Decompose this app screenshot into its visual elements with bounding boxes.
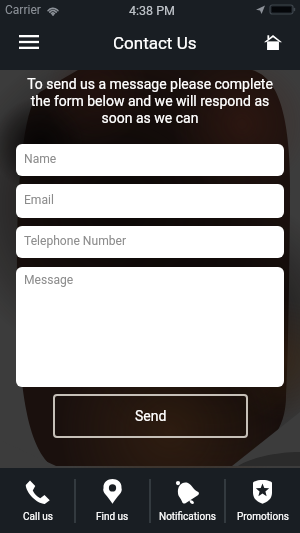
- staticText: Send: [135, 408, 167, 424]
- staticText: Find us: [96, 511, 129, 523]
- staticText: Email: [24, 193, 54, 207]
- button[interactable]: Home: [250, 23, 295, 68]
- button[interactable]: Menu: [8, 23, 53, 68]
- button[interactable]: Call us: [0, 468, 75, 533]
- staticText: Message: [24, 273, 74, 287]
- staticText: To send us a message please complete the…: [18, 76, 282, 127]
- button[interactable]: Email: [16, 184, 284, 218]
- button[interactable]: Message: [16, 267, 284, 387]
- staticText: Carrier: [5, 3, 41, 17]
- staticText: Name: [24, 152, 57, 166]
- button[interactable]: Telephone Number: [16, 226, 284, 258]
- button[interactable]: Name: [16, 144, 284, 176]
- staticText: Notifications: [159, 511, 216, 523]
- button[interactable]: Find us: [75, 468, 150, 533]
- staticText: Promotions: [237, 511, 289, 523]
- staticText: Telephone Number: [24, 234, 127, 248]
- button[interactable]: Promotions: [225, 468, 300, 533]
- button[interactable]: Notifications: [150, 468, 225, 533]
- button[interactable]: Send: [53, 394, 248, 438]
- staticText: 4:38 PM: [129, 3, 176, 18]
- staticText: Contact Us: [113, 33, 197, 53]
- staticText: Call us: [23, 511, 53, 523]
